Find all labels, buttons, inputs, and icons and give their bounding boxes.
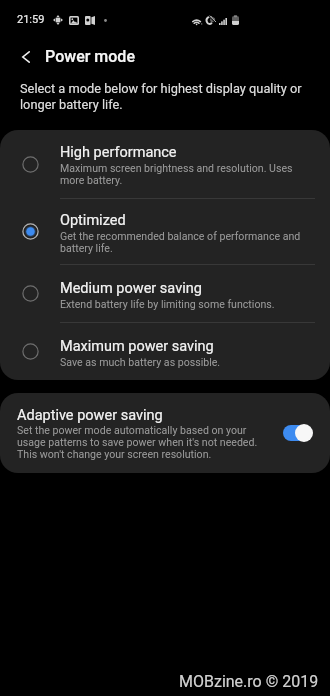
staticText: MOBzine.ro © 2019 (179, 672, 319, 691)
staticText: Extend battery life by limiting some fun… (60, 298, 275, 310)
other: Signal (219, 18, 227, 25)
staticText: Maximum screen brightness and resolution… (60, 162, 302, 186)
staticText: Save as much battery as possible. (60, 356, 221, 368)
other: Silent (206, 16, 216, 25)
button[interactable]: Medium power saving (0, 265, 330, 323)
button[interactable]: Optimized (0, 199, 330, 265)
staticText: Get the recommended balance of performan… (60, 230, 302, 254)
staticText: Set the power mode automatically based o… (17, 424, 275, 460)
other: Wi-Fi (192, 17, 202, 25)
staticText: Optimized (60, 212, 126, 229)
button[interactable]: Navigate up (0, 36, 45, 77)
other: Gallery (69, 16, 79, 25)
staticText: Adaptive power saving (17, 407, 163, 424)
staticText: High performance (60, 144, 177, 161)
staticText: Maximum power saving (60, 338, 214, 355)
button[interactable]: Adaptive power saving toggle (283, 424, 312, 442)
staticText: Power mode (45, 47, 135, 66)
staticText: 21:59 (17, 13, 45, 26)
other: App (85, 16, 95, 25)
staticText: Select a mode below for highest display … (20, 81, 314, 113)
other: Battery (232, 15, 239, 25)
other: Move (53, 15, 63, 25)
button[interactable]: Adaptive power saving (0, 393, 330, 473)
button[interactable]: High performance (0, 130, 330, 199)
button[interactable]: Maximum power saving (0, 323, 330, 380)
staticText: Medium power saving (60, 280, 202, 297)
